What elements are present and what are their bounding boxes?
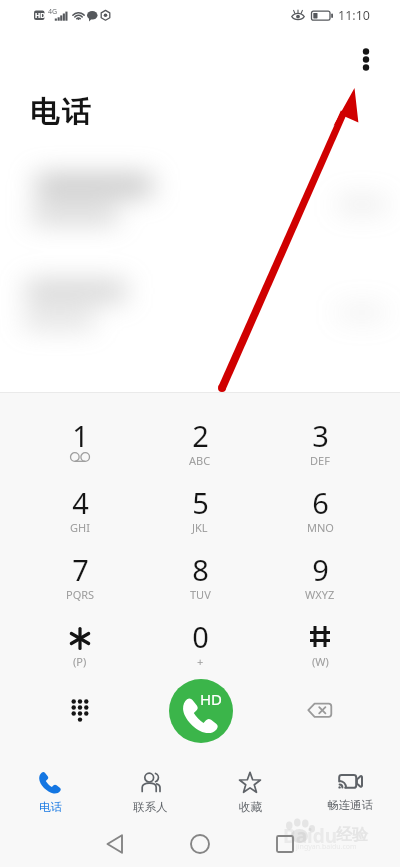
- staticText: 6: [312, 483, 329, 522]
- staticText: 话: [62, 94, 91, 131]
- button[interactable]: 电话: [0, 750, 100, 818]
- button[interactable]: Home: [175, 820, 225, 867]
- staticText: 7: [72, 550, 89, 589]
- staticText: 收藏: [239, 800, 262, 814]
- staticText: 畅连通话: [327, 798, 373, 812]
- staticText: 经验: [336, 825, 368, 845]
- button[interactable]: 收藏: [200, 750, 300, 818]
- staticText: ABC: [189, 453, 211, 468]
- button[interactable]: 7: [20, 546, 140, 613]
- staticText: 11:10: [338, 7, 370, 24]
- button[interactable]: Call: [169, 679, 233, 743]
- button[interactable]: Back: [90, 820, 140, 867]
- button[interactable]: Keypad: [50, 675, 110, 743]
- staticText: WXYZ: [305, 587, 335, 602]
- staticText: 0: [192, 617, 209, 656]
- button[interactable]: 1: [20, 412, 140, 479]
- staticText: HD: [35, 11, 46, 21]
- staticText: jingyan.baidu.com: [296, 842, 357, 852]
- staticText: +: [197, 654, 204, 669]
- staticText: Baidu: [283, 823, 338, 849]
- button[interactable]: 3: [260, 412, 380, 479]
- button[interactable]: 4: [20, 479, 140, 546]
- button[interactable]: 8: [140, 546, 260, 613]
- staticText: GHI: [70, 520, 90, 535]
- staticText: JKL: [192, 520, 208, 535]
- staticText: 8: [192, 550, 209, 589]
- staticText: MNO: [307, 520, 334, 535]
- staticText: 4: [72, 483, 89, 522]
- staticText: HD: [200, 689, 223, 709]
- staticText: PQRS: [66, 587, 95, 602]
- button[interactable]: Delete: [291, 677, 351, 745]
- staticText: 联系人: [133, 800, 168, 814]
- staticText: 1: [72, 416, 89, 455]
- staticText: (P): [73, 654, 87, 669]
- button[interactable]: More options: [348, 43, 384, 79]
- button[interactable]: 畅连通话: [300, 750, 400, 818]
- staticText: 9: [312, 550, 329, 589]
- button[interactable]: 5: [140, 479, 260, 546]
- staticText: TUV: [190, 587, 211, 602]
- staticText: 2: [192, 416, 209, 455]
- staticText: 3: [312, 416, 329, 455]
- staticText: 4G: [48, 7, 58, 17]
- button[interactable]: 2: [140, 412, 260, 479]
- staticText: (W): [312, 654, 329, 669]
- button[interactable]: 联系人: [100, 750, 200, 818]
- button[interactable]: (P): [20, 613, 140, 680]
- button[interactable]: (W): [260, 613, 380, 680]
- button[interactable]: Recent apps: [260, 820, 310, 867]
- staticText: DEF: [310, 453, 330, 468]
- staticText: 电: [30, 94, 59, 131]
- staticText: 5: [192, 483, 209, 522]
- button[interactable]: 0: [140, 613, 260, 680]
- button[interactable]: 6: [260, 479, 380, 546]
- button[interactable]: 9: [260, 546, 380, 613]
- staticText: 电话: [39, 800, 62, 814]
